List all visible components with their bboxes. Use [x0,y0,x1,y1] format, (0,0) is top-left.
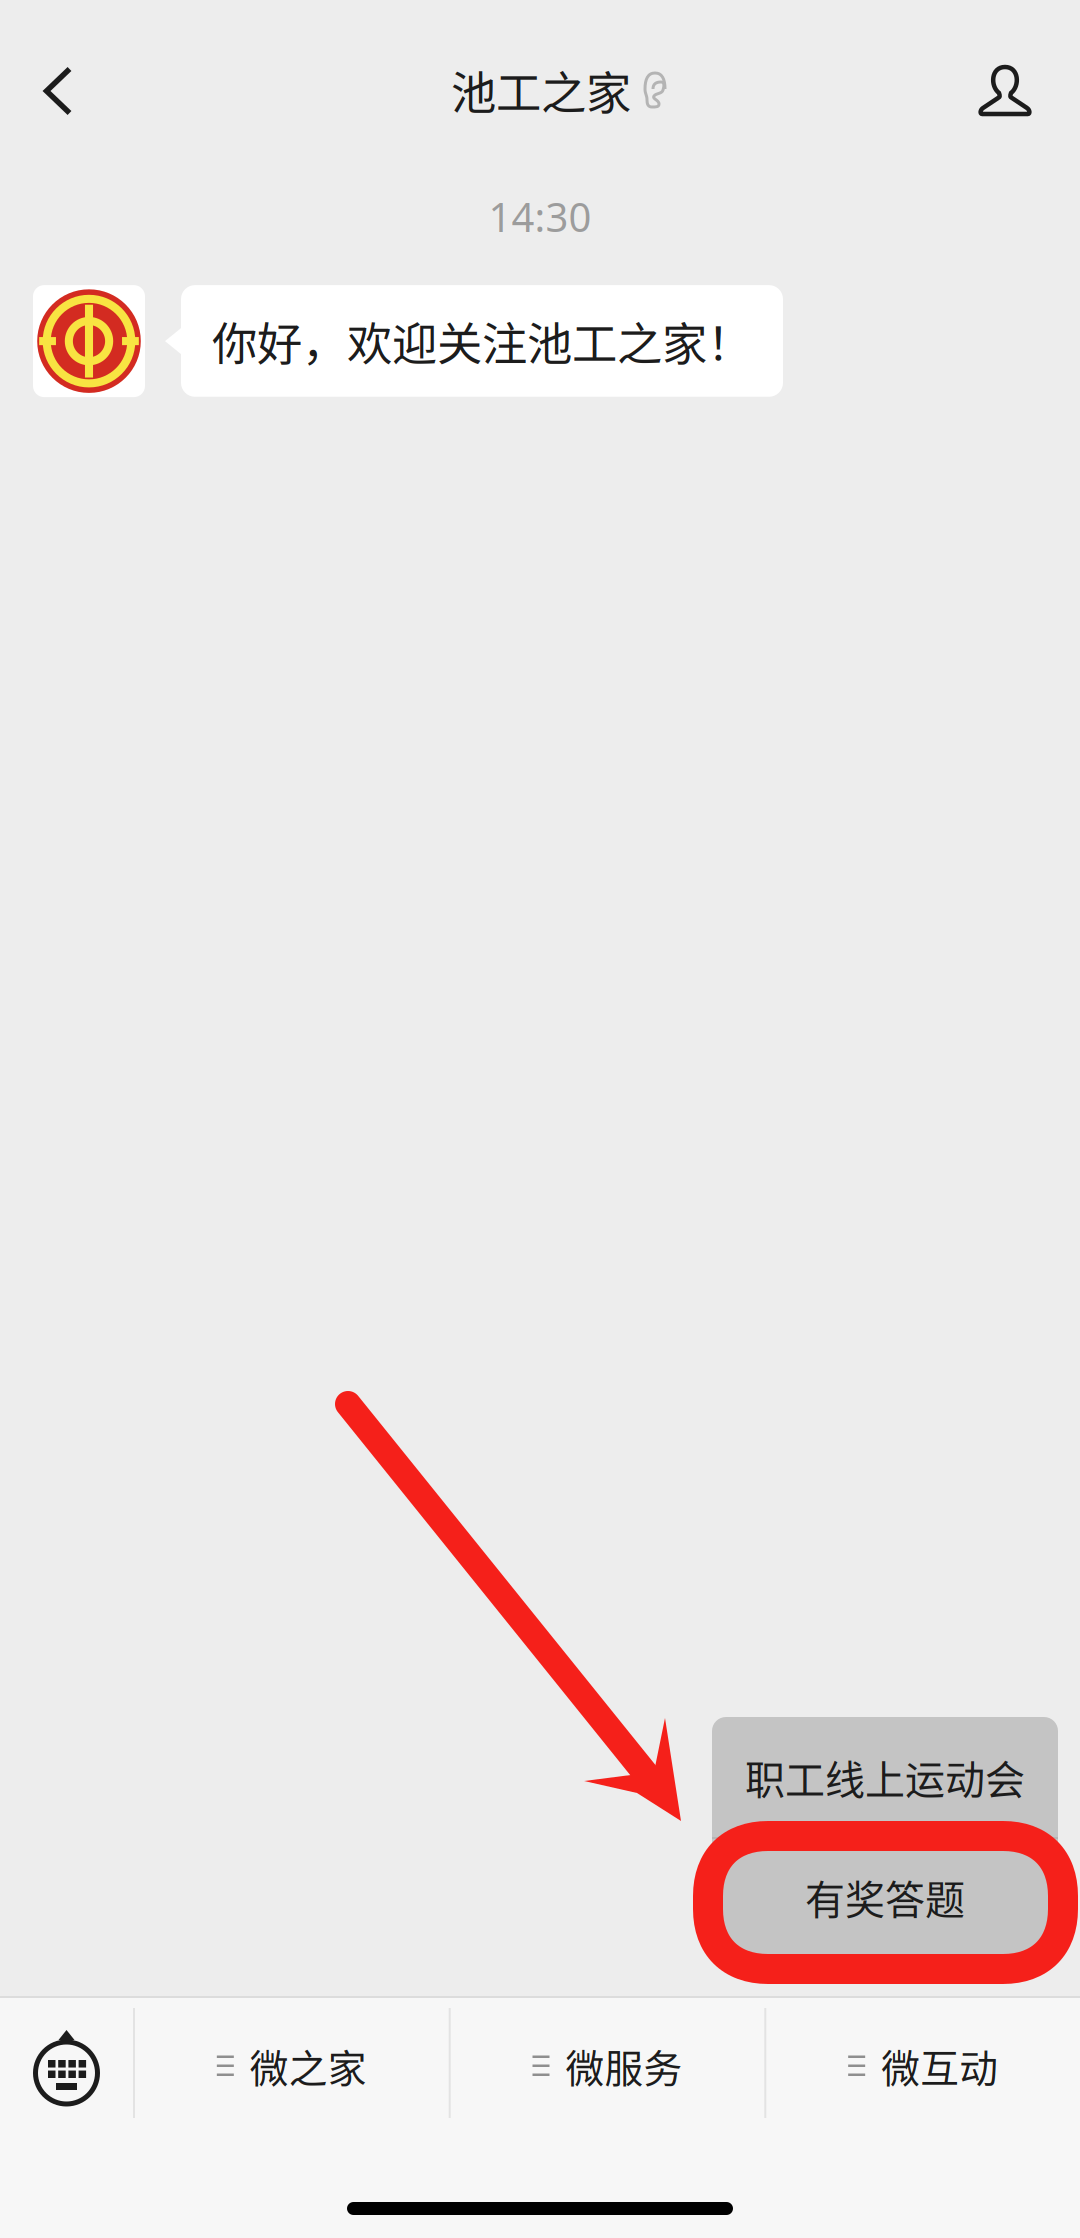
staticText: 微互动 [881,2038,998,2094]
button[interactable]: Keyboard [0,1998,133,2128]
staticText: 有奖答题 [805,1868,965,1926]
staticText: 微服务 [565,2038,682,2094]
button[interactable]: 微服务 [451,1998,764,2128]
button[interactable]: 微互动 [766,1998,1080,2128]
button[interactable]: Contact info [930,0,1080,132]
staticText: 你好，欢迎关注池工之家！ [212,308,752,374]
staticText: 池工之家 [451,57,631,123]
button[interactable]: 有奖答题 [712,1839,1058,1965]
button[interactable]: Back [0,0,116,132]
button[interactable]: 职工线上运动会 [712,1717,1058,1837]
staticText: 微之家 [250,2038,367,2094]
staticText: 14:30 [488,190,591,243]
button[interactable]: 微之家 [135,1998,449,2128]
staticText: 职工线上运动会 [745,1748,1025,1806]
